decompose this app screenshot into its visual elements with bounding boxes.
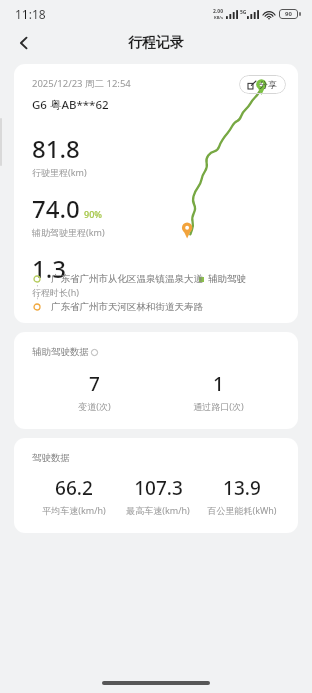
staticText: 13.9 bbox=[223, 475, 261, 501]
button[interactable]: 分享 bbox=[239, 75, 286, 94]
staticText: 行驶里程(km) bbox=[32, 166, 87, 178]
staticText: 驾驶数据 bbox=[32, 452, 70, 464]
staticText: 辅助驾驶 bbox=[208, 273, 246, 285]
staticText: 百公里能耗(kWh) bbox=[207, 504, 277, 516]
staticText: 变道(次) bbox=[78, 400, 111, 412]
staticText: 5G bbox=[240, 9, 247, 16]
button[interactable]: 7 bbox=[32, 371, 156, 412]
staticText: 2025/12/23 周二 12:54 bbox=[32, 77, 131, 90]
staticText: 广东省广州市天河区林和街道天寿路 bbox=[51, 301, 203, 313]
staticText: 2.00 bbox=[213, 8, 223, 15]
staticText: 66.2 bbox=[55, 475, 93, 501]
staticText: 行程记录 bbox=[128, 34, 184, 52]
staticText: KB/s bbox=[214, 15, 223, 20]
button[interactable]: 66.2 bbox=[32, 475, 116, 516]
button[interactable]: 13.9 bbox=[200, 475, 284, 516]
staticText: 广东省广州市从化区温泉镇温泉大道 bbox=[51, 273, 203, 285]
staticText: 最高车速(km/h) bbox=[126, 504, 190, 516]
staticText: 辅助驾驶数据 bbox=[32, 346, 89, 358]
button[interactable]: Back bbox=[6, 27, 42, 59]
staticText: G6 粤AB***62 bbox=[32, 97, 109, 113]
staticText: 通过路口(次) bbox=[193, 400, 244, 412]
staticText: 辅助驾驶里程(km) bbox=[32, 226, 105, 238]
staticText: 107.3 bbox=[134, 475, 183, 501]
staticText: 分享 bbox=[259, 79, 277, 90]
staticText: 7 bbox=[89, 371, 100, 397]
staticText: 平均车速(km/h) bbox=[42, 504, 106, 516]
staticText: 1 bbox=[213, 371, 224, 397]
staticText: 81.8 bbox=[32, 132, 80, 165]
button[interactable]: 107.3 bbox=[116, 475, 200, 516]
staticText: 90 bbox=[285, 10, 292, 18]
staticText: 90% bbox=[84, 208, 102, 220]
button[interactable]: 1 bbox=[156, 371, 280, 412]
staticText: 行程时长(h) bbox=[32, 286, 79, 298]
staticText: 1.3 bbox=[32, 252, 66, 285]
staticText: 74.0 bbox=[32, 192, 80, 225]
staticText: 11:18 bbox=[15, 6, 46, 22]
